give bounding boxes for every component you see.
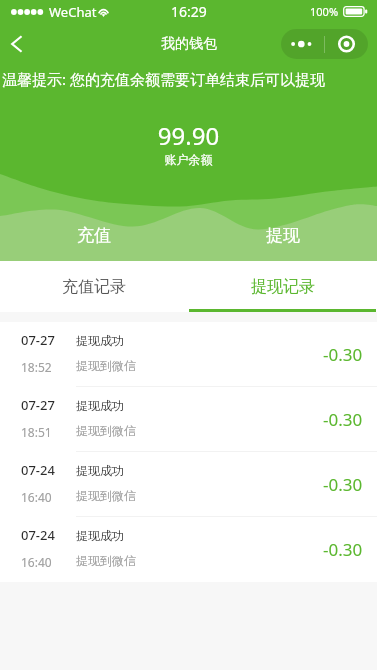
staticText: 18:51 <box>21 424 52 440</box>
staticText: 充值记录 <box>62 277 126 297</box>
button[interactable]: 充值 <box>0 210 188 261</box>
staticText: 18:52 <box>21 359 52 375</box>
staticText: 提现到微信 <box>76 488 136 503</box>
button[interactable]: 提现记录 <box>188 261 377 312</box>
staticText: 16:29 <box>171 2 207 21</box>
button[interactable]: 提现 <box>188 210 377 261</box>
button[interactable]: 充值记录 <box>0 261 188 312</box>
staticText: 提现到微信 <box>76 423 136 438</box>
staticText: 16:40 <box>21 489 52 505</box>
staticText: 07-24 <box>21 461 55 479</box>
button[interactable]: Menu <box>281 29 368 59</box>
staticText: 充值 <box>77 225 111 246</box>
staticText: 提现成功 <box>76 333 124 348</box>
staticText: 16:40 <box>21 554 52 570</box>
staticText: 提现成功 <box>76 463 124 478</box>
staticText: 提现成功 <box>76 398 124 413</box>
staticText: WeChat <box>49 3 97 21</box>
staticText: -0.30 <box>323 408 363 431</box>
staticText: 提现到微信 <box>76 553 136 568</box>
staticText: 07-24 <box>21 526 55 544</box>
staticText: -0.30 <box>323 538 363 561</box>
button[interactable]: 07-27 <box>0 387 377 452</box>
staticText: 提现记录 <box>251 277 315 297</box>
staticText: -0.30 <box>323 473 363 496</box>
staticText: 温馨提示: 您的充值余额需要订单结束后可以提现 <box>2 69 325 89</box>
staticText: 提现 <box>266 225 300 246</box>
staticText: 99.90 <box>0 119 377 152</box>
staticText: 我的钱包 <box>161 35 217 53</box>
staticText: 100% <box>310 4 339 19</box>
staticText: -0.30 <box>323 343 363 366</box>
button[interactable]: 07-27 <box>0 322 377 387</box>
staticText: 提现到微信 <box>76 358 136 373</box>
button[interactable]: Back <box>0 23 34 64</box>
staticText: 07-27 <box>21 396 55 414</box>
button[interactable]: 07-24 <box>0 517 377 582</box>
staticText: 提现成功 <box>76 528 124 543</box>
button[interactable]: 07-24 <box>0 452 377 517</box>
staticText: 账户余额 <box>0 152 377 167</box>
staticText: 07-27 <box>21 331 55 349</box>
